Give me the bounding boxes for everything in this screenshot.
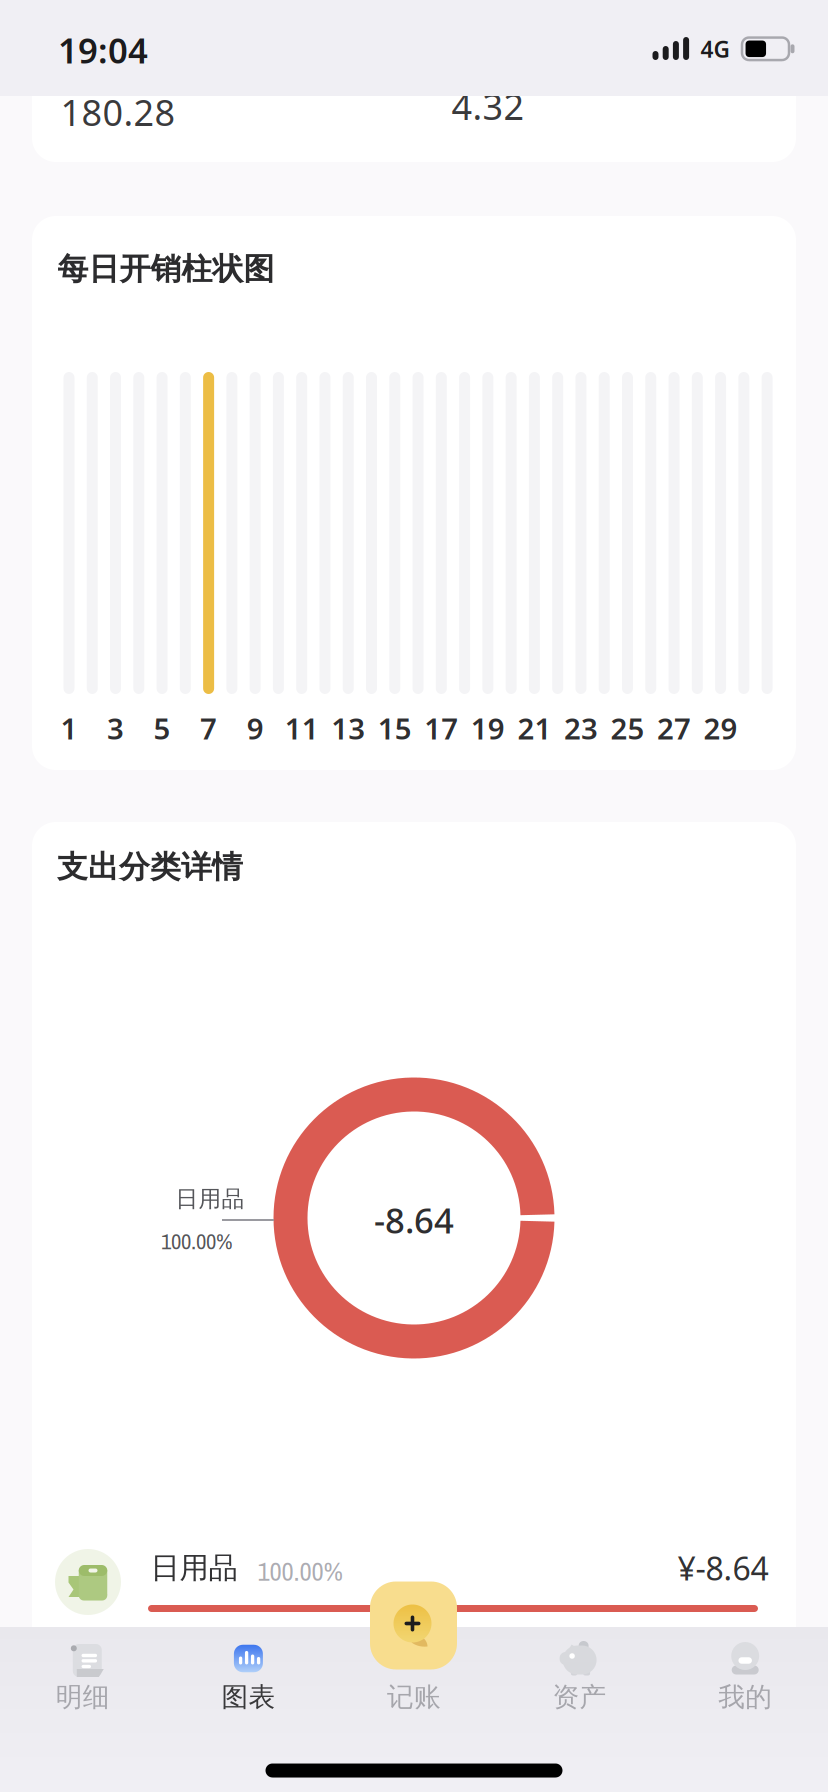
staticText: 9 — [247, 708, 264, 747]
staticText: 日用品 — [175, 1185, 244, 1213]
staticText: 每日开销柱状图 — [57, 250, 274, 288]
staticText: 180.28 — [60, 88, 175, 136]
staticText: 5 — [154, 708, 171, 747]
staticText: -8.64 — [374, 1197, 454, 1243]
button[interactable]: 我的 — [680, 1633, 810, 1721]
button[interactable]: 明细 — [18, 1633, 148, 1721]
staticText: 资产 — [553, 1681, 607, 1713]
staticText: 记账 — [387, 1681, 441, 1713]
staticText: 4.32 — [451, 82, 524, 130]
button[interactable]: 记账 — [349, 1633, 479, 1721]
staticText: 日用品 — [150, 1550, 237, 1586]
staticText: 明细 — [56, 1681, 110, 1713]
staticText: 100.00% — [161, 1226, 233, 1256]
staticText: 29 — [704, 708, 738, 747]
staticText: 15 — [378, 708, 412, 747]
staticText: 11 — [285, 708, 319, 747]
staticText: 支出分类详情 — [57, 848, 243, 886]
staticText: 3 — [107, 708, 124, 747]
staticText: 7 — [200, 708, 217, 747]
staticText: 17 — [424, 708, 458, 747]
staticText: 4G — [700, 34, 729, 64]
staticText: 23 — [564, 708, 598, 747]
staticText: 25 — [610, 708, 644, 747]
staticText: 13 — [331, 708, 365, 747]
staticText: 1 — [60, 708, 77, 747]
staticText: 100.00% — [257, 1553, 342, 1589]
button[interactable]: 日用品 — [44, 1541, 784, 1621]
button[interactable]: 图表 — [183, 1633, 313, 1721]
staticText: ¥-8.64 — [677, 1547, 768, 1589]
staticText: 我的 — [718, 1681, 772, 1713]
staticText: 21 — [517, 708, 551, 747]
staticText: 27 — [657, 708, 691, 747]
button[interactable]: 记账 — [369, 1580, 457, 1670]
button[interactable]: 资产 — [515, 1633, 645, 1721]
staticText: 图表 — [221, 1681, 275, 1713]
staticText: 19 — [471, 708, 505, 747]
staticText: 19:04 — [58, 27, 148, 73]
